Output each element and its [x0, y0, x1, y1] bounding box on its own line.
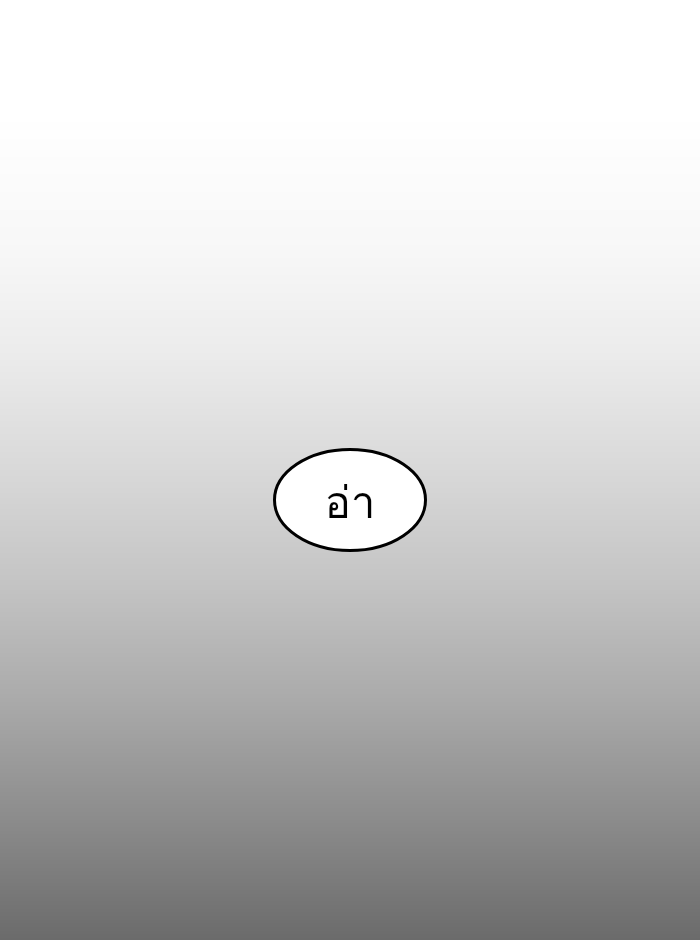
staticText: อ่า	[324, 467, 376, 537]
button[interactable]: อ่า	[272, 447, 428, 553]
